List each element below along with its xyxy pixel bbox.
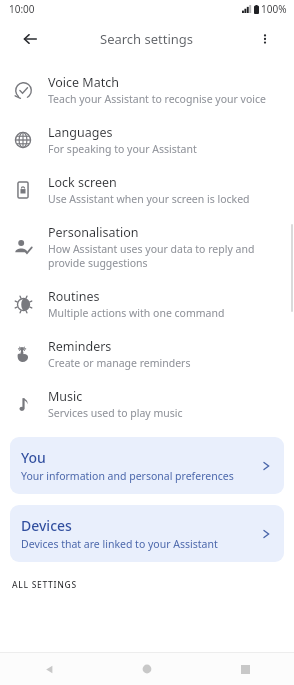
staticText: ALL SETTINGS [12,579,77,591]
button[interactable]: Reminders [0,329,294,379]
button[interactable]: Recent apps [196,653,294,685]
button[interactable]: Personalisation [0,215,294,279]
button[interactable]: Back [10,22,284,56]
button[interactable]: Voice Match [0,65,294,115]
staticText: Services used to play music [48,406,183,420]
staticText: Lock screen [48,174,117,191]
button[interactable]: Routines [0,279,294,329]
button[interactable]: Back [17,26,43,52]
staticText: How Assistant uses your data to reply an… [48,242,278,270]
staticText: Create or manage reminders [48,356,191,370]
staticText: Music [48,388,83,405]
staticText: Multiple actions with one command [48,306,225,320]
staticText: Devices [21,516,72,535]
button[interactable]: Music [0,379,294,429]
staticText: Teach your Assistant to recognise your v… [48,92,266,106]
staticText: Use Assistant when your screen is locked [48,192,250,206]
button[interactable]: Home [98,653,196,685]
staticText: You [21,448,46,467]
staticText: Voice Match [48,74,119,91]
staticText: Routines [48,288,100,305]
staticText: Search settings [100,30,194,48]
button[interactable]: You [10,437,284,494]
button[interactable]: Lock screen [0,165,294,215]
button[interactable]: More options [252,26,278,52]
staticText: Languages [48,124,113,141]
staticText: For speaking to your Assistant [48,142,197,156]
staticText: 10:00 [9,2,35,16]
staticText: Reminders [48,338,112,355]
button[interactable]: Devices [10,505,284,562]
button[interactable]: Back [0,653,98,685]
staticText: Devices that are linked to your Assistan… [21,537,218,551]
staticText: Personalisation [48,224,139,241]
staticText: 100% [261,2,287,16]
staticText: Your information and personal preference… [21,469,234,483]
button[interactable]: Languages [0,115,294,165]
